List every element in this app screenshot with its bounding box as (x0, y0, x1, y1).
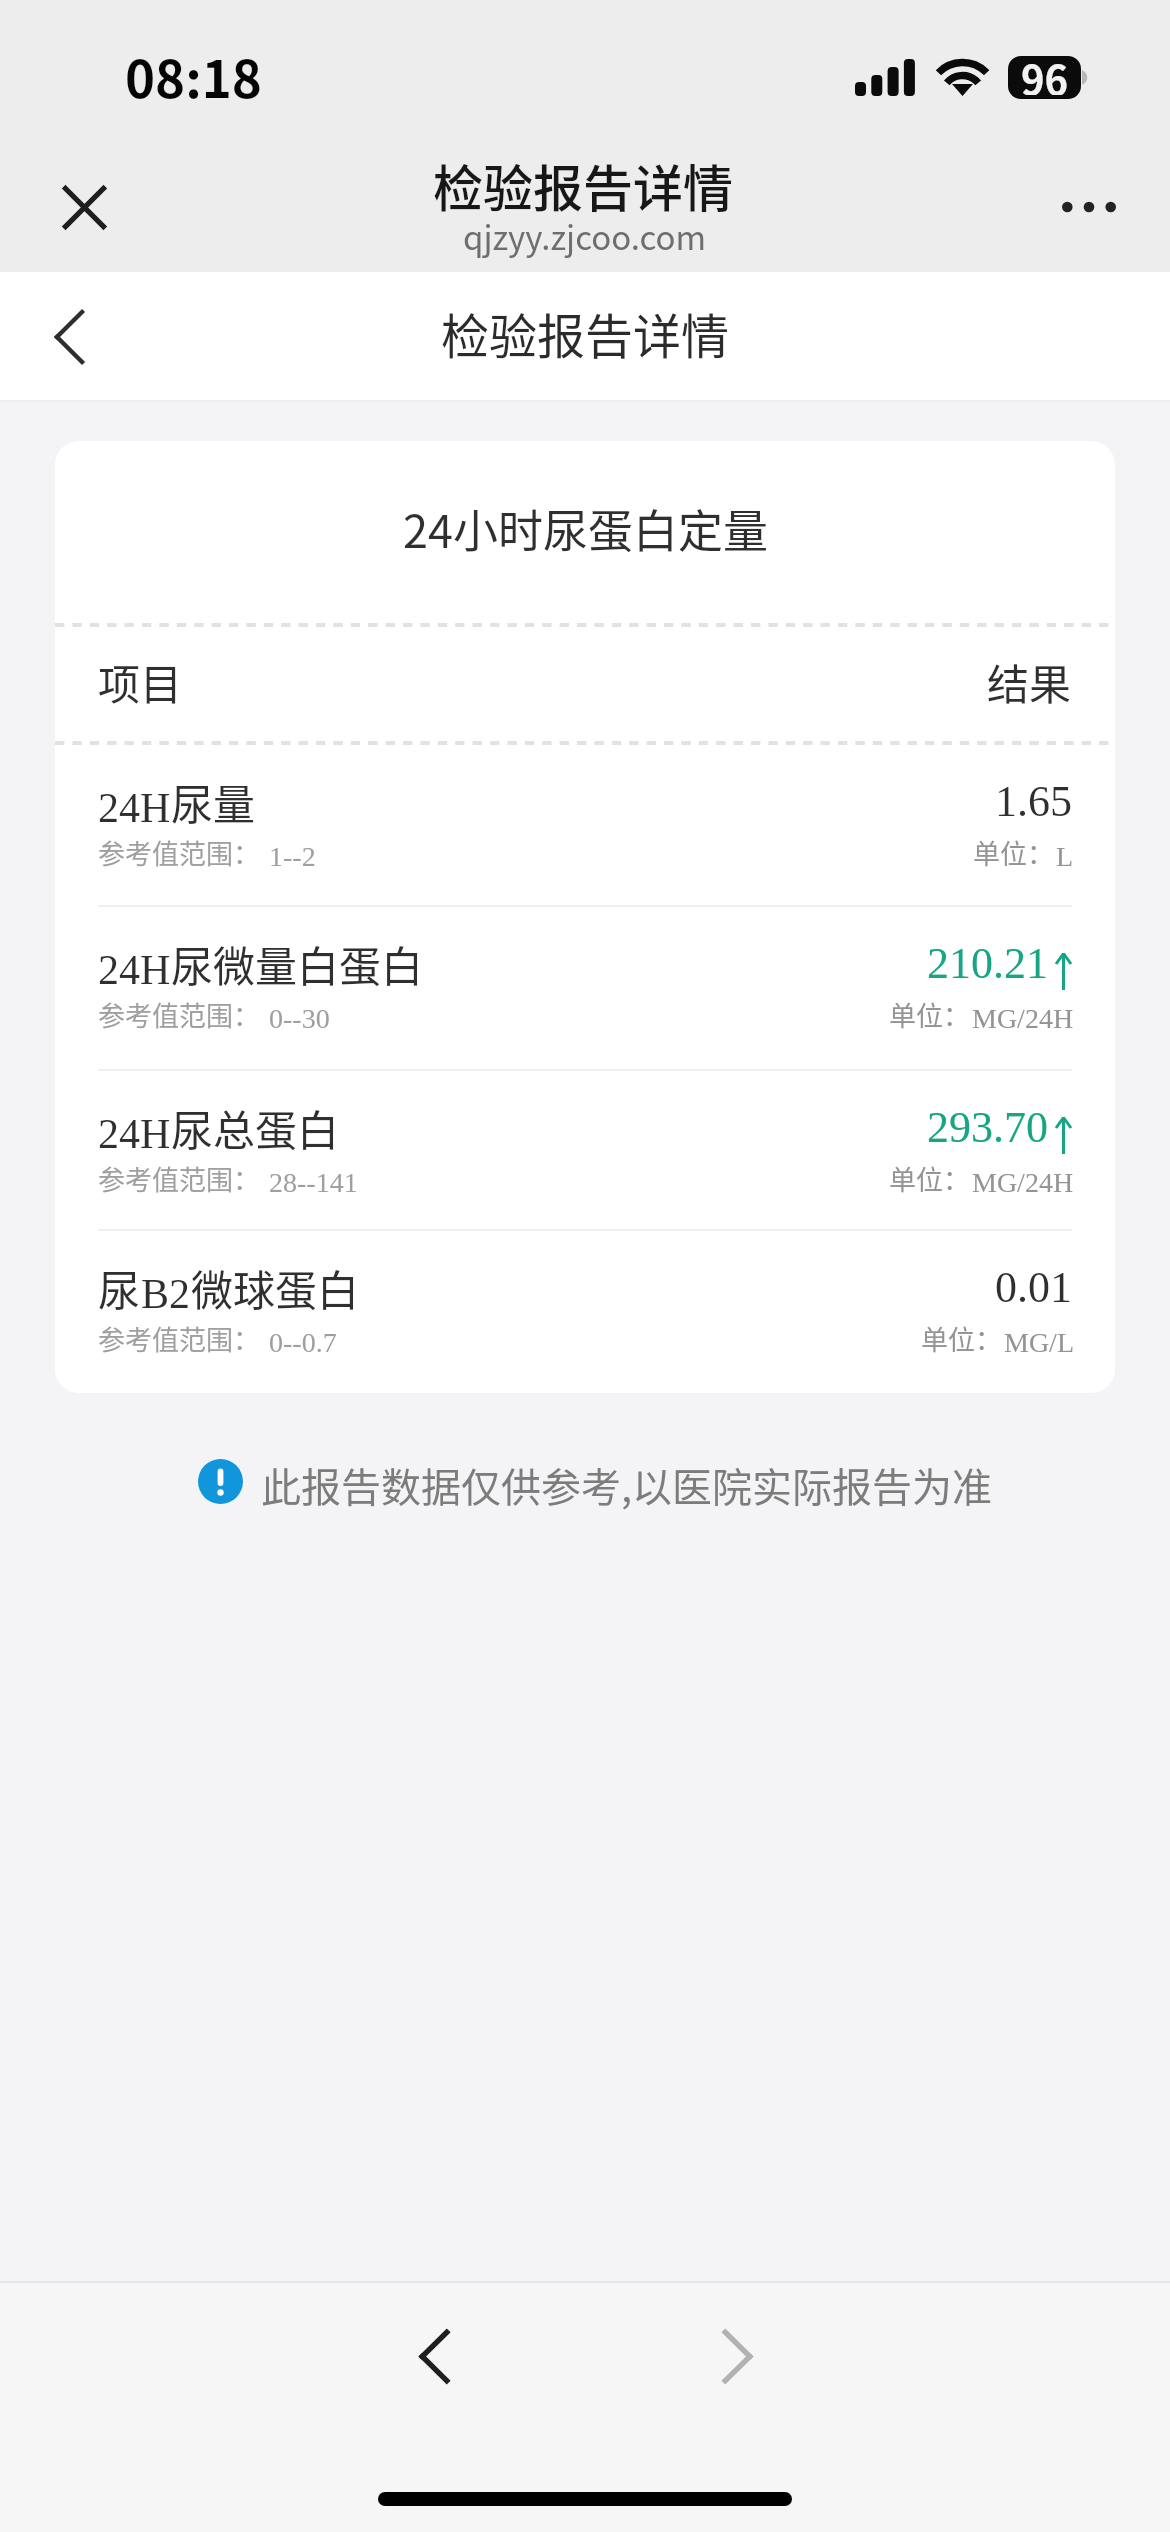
staticText: 参考值范围： (98, 995, 260, 1034)
staticText: 24H (98, 785, 171, 832)
staticText: 0--30 (269, 1003, 330, 1034)
button[interactable]: 24H (55, 907, 1115, 1071)
staticText: MG/24H (972, 1167, 1074, 1198)
staticText: 210.21 (927, 939, 1048, 988)
staticText: 检验报告详情 (441, 298, 730, 368)
staticText: 08:18 (125, 39, 262, 113)
staticText: 0.01 (995, 1263, 1072, 1312)
button[interactable]: More options (1029, 147, 1149, 267)
staticText: 24H (98, 947, 171, 994)
staticText: 结果 (987, 651, 1072, 712)
staticText: 此报告数据仅供参考,以医院实际报告为准 (261, 1456, 993, 1514)
staticText: 检验报告详情 (433, 149, 733, 221)
staticText: 单位： (889, 1159, 970, 1198)
staticText: MG/L (1004, 1327, 1074, 1358)
staticText: 24小时尿蛋白定量 (403, 496, 768, 561)
staticText: 单位： (921, 1319, 1002, 1358)
staticText: B2 (141, 1271, 191, 1318)
button[interactable]: 尿 (55, 1231, 1115, 1393)
staticText: 尿总蛋白 (171, 1097, 340, 1158)
staticText: 单位： (889, 995, 970, 1034)
button[interactable]: Forward (682, 2301, 792, 2411)
staticText: 单位： (973, 833, 1054, 872)
staticText: 参考值范围： (98, 1319, 260, 1358)
button[interactable]: Close (24, 147, 144, 267)
staticText: L (1056, 841, 1074, 872)
staticText: 尿微量白蛋白 (171, 933, 424, 994)
staticText: 1--2 (269, 841, 316, 872)
staticText: 项目 (98, 651, 183, 712)
staticText: 尿 (98, 1257, 141, 1318)
staticText: 参考值范围： (98, 833, 260, 872)
staticText: 参考值范围： (98, 1159, 260, 1198)
staticText: 96 (1021, 49, 1069, 95)
button[interactable]: Back (379, 2301, 489, 2411)
staticText: 1.65 (995, 777, 1072, 826)
staticText: 28--141 (269, 1167, 358, 1198)
staticText: qjzyy.zjcoo.com (463, 212, 707, 260)
staticText: 尿量 (171, 771, 256, 832)
staticText: MG/24H (972, 1003, 1074, 1034)
staticText: 微球蛋白 (191, 1257, 360, 1318)
staticText: 24H (98, 1111, 171, 1158)
staticText: 0--0.7 (269, 1327, 337, 1358)
button[interactable]: Back (14, 282, 124, 392)
button[interactable]: 24H (55, 745, 1115, 907)
button[interactable]: 24H (55, 1071, 1115, 1231)
staticText: 293.70 (927, 1103, 1048, 1152)
